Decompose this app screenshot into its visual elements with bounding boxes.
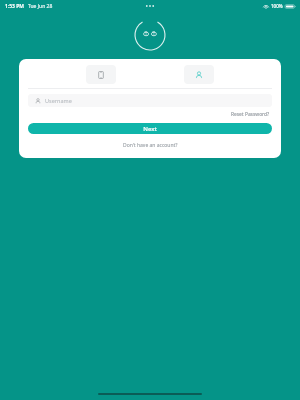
staticText: 100% bbox=[271, 3, 283, 9]
staticText: Username bbox=[45, 97, 72, 104]
button[interactable]: Reset Password? bbox=[229, 110, 272, 119]
staticText: Next bbox=[143, 125, 157, 133]
staticText: 1:53 PM bbox=[5, 3, 24, 10]
staticText: Reset Password? bbox=[231, 111, 270, 118]
button[interactable]: Next bbox=[28, 123, 272, 134]
staticText: Tue Jun 28 bbox=[28, 3, 53, 10]
button[interactable]: Don't have an account? bbox=[120, 141, 181, 150]
button[interactable]: Username login bbox=[184, 65, 214, 84]
button[interactable]: Username bbox=[28, 94, 272, 107]
button[interactable]: Phone login bbox=[86, 65, 116, 84]
staticText: Don't have an account? bbox=[123, 142, 178, 149]
